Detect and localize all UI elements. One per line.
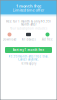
staticText: Download	[2, 38, 16, 41]
staticText: Limited time offer	[12, 7, 44, 13]
staticText: Your subscription includes	[10, 27, 47, 30]
staticText: Ad free	[42, 38, 53, 41]
button[interactable]: Start my 1 month free	[5, 47, 52, 53]
staticText: 1 month free	[16, 3, 41, 9]
staticText: Start my 1 month free	[12, 48, 44, 52]
staticText: Free for 1 month & only $9.99/	[6, 20, 51, 23]
staticText: $9.99/month after free trial.	[8, 55, 48, 58]
staticText: All devices	[21, 38, 35, 41]
staticText: month after	[20, 23, 36, 26]
staticText: Terms apply	[21, 62, 36, 65]
staticText: Cancel anytime.	[18, 58, 39, 61]
